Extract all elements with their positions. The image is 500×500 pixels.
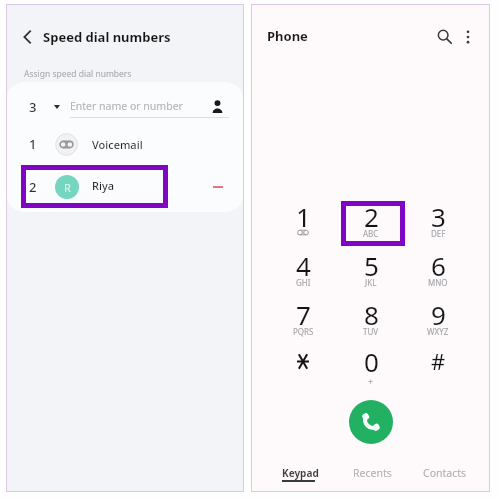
staticText: 4 [296,248,311,278]
staticText: 3 [431,199,446,229]
button[interactable]: 7 [274,295,332,341]
staticText: 1 [296,199,311,229]
button[interactable]: star key [274,342,332,388]
staticText: 8 [364,297,379,327]
staticText: JKL [365,277,377,288]
staticText: DEF [431,228,446,239]
staticText: Enter name or number [70,99,183,113]
button[interactable]: Keypad [264,456,334,492]
staticText: Phone [267,27,308,45]
button[interactable]: 8 [342,295,400,341]
button[interactable]: 2 [342,197,400,243]
button[interactable]: 3 [409,197,467,243]
button[interactable]: 6 [409,246,467,292]
button[interactable]: 0 [342,342,400,388]
staticText: 0 [364,344,379,374]
button[interactable]: Recents [335,456,408,492]
staticText: 6 [431,248,446,278]
staticText: ABC [363,228,379,239]
button[interactable]: Remove [207,176,229,198]
staticText: Keypad [282,466,319,480]
staticText: 1 [29,135,37,153]
staticText: Recents [353,466,392,480]
button[interactable]: Call [349,400,393,444]
staticText: Voicemail [92,137,143,152]
staticText: 7 [296,297,311,327]
staticText: MNO [428,277,448,288]
button[interactable]: # [409,344,467,390]
staticText: # [431,346,446,376]
staticText: Contacts [423,466,467,480]
button[interactable]: 4 [274,246,332,292]
staticText: 2 [29,178,37,196]
staticText: Assign speed dial numbers [24,68,132,80]
button[interactable]: Back [13,22,42,51]
staticText: TUV [363,326,379,337]
button[interactable]: Search [430,22,458,50]
button[interactable]: 5 [342,246,400,292]
staticText: + [368,375,374,387]
staticText: 5 [364,248,379,278]
staticText: Riya [92,178,115,193]
staticText: GHI [296,277,311,288]
button[interactable]: Contacts [405,456,482,492]
button[interactable]: 1 [274,197,332,243]
button[interactable]: 1 [6,125,244,167]
staticText: 9 [431,297,446,327]
staticText: PQRS [293,326,314,337]
button[interactable]: 9 [409,295,467,341]
staticText: Speed dial numbers [43,28,171,46]
staticText: 3 [29,98,37,116]
staticText: R [64,180,71,195]
staticText: WXYZ [427,326,449,337]
staticText: 2 [364,199,379,229]
button[interactable]: 2 [6,167,244,209]
button[interactable]: Choose contact [206,95,229,118]
button[interactable]: More options [454,23,482,51]
